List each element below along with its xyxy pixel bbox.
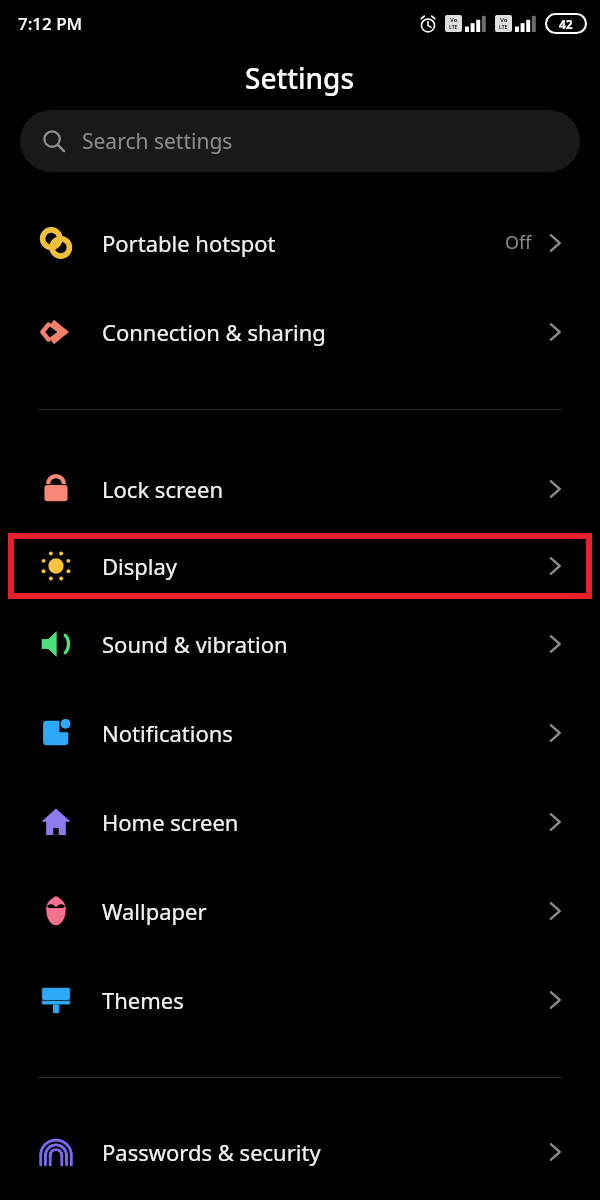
other: Open [548,987,562,1013]
other: Open [548,230,562,256]
other: Open [548,720,562,746]
other: Open [548,476,562,502]
staticText: Connection & sharing [102,317,326,347]
staticText: Themes [102,985,184,1015]
staticText: Home screen [102,807,239,837]
staticText: Vo [500,16,508,24]
button[interactable]: Home screen [0,777,600,866]
other: Open [548,1139,562,1165]
staticText: Vo [450,16,458,24]
button[interactable]: Display [8,533,592,599]
other: Open [548,898,562,924]
staticText: Portable hotspot [102,228,276,258]
staticText: Lock screen [102,474,224,504]
staticText: Search settings [82,127,233,156]
button[interactable]: Search settings [20,110,580,172]
button[interactable]: Wallpaper [0,866,600,955]
staticText: Display [102,551,178,581]
staticText: Sound & vibration [102,629,288,659]
button[interactable]: Passwords & security [0,1107,600,1196]
button[interactable]: Sound & vibration [0,599,600,688]
staticText: Passwords & security [102,1137,321,1167]
button[interactable]: Notifications [0,688,600,777]
staticText: Off [505,230,532,255]
button[interactable]: Themes [0,955,600,1044]
other: Open [548,631,562,657]
button[interactable]: Connection & sharing [0,287,600,376]
other: Open [548,553,562,579]
staticText: Wallpaper [102,896,207,926]
other: Open [548,319,562,345]
button[interactable]: Lock screen [0,444,600,533]
staticText: Settings [245,59,355,97]
staticText: Notifications [102,718,233,748]
button[interactable]: Portable hotspot [0,198,600,287]
other: Open [548,809,562,835]
staticText: 7:12 PM [18,12,83,35]
staticText: 42 [559,16,573,32]
staticText: LTE [499,24,508,31]
staticText: LTE [449,24,458,31]
